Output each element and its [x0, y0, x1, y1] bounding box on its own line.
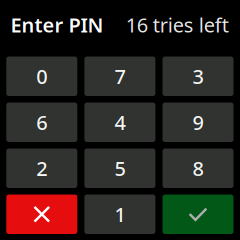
- button[interactable]: Cancel: [6, 194, 77, 234]
- staticText: 4: [114, 109, 125, 136]
- staticText: 8: [192, 155, 203, 182]
- staticText: 5: [114, 155, 125, 182]
- button[interactable]: 0: [6, 56, 77, 96]
- button[interactable]: 4: [84, 102, 155, 142]
- button[interactable]: 5: [84, 148, 155, 188]
- button[interactable]: 9: [162, 102, 233, 142]
- button[interactable]: 7: [84, 56, 155, 96]
- staticText: 0: [36, 63, 47, 90]
- button[interactable]: 1: [84, 194, 155, 234]
- staticText: 9: [192, 109, 203, 136]
- staticText: 1: [114, 201, 125, 228]
- staticText: 2: [36, 155, 47, 182]
- staticText: 16 tries left: [126, 11, 229, 38]
- staticText: 3: [192, 63, 203, 90]
- staticText: Enter PIN: [10, 11, 103, 38]
- button[interactable]: 2: [6, 148, 77, 188]
- staticText: 7: [114, 63, 125, 90]
- staticText: 6: [36, 109, 47, 136]
- button[interactable]: 6: [6, 102, 77, 142]
- button[interactable]: Confirm: [162, 194, 233, 234]
- button[interactable]: 3: [162, 56, 233, 96]
- button[interactable]: 8: [162, 148, 233, 188]
